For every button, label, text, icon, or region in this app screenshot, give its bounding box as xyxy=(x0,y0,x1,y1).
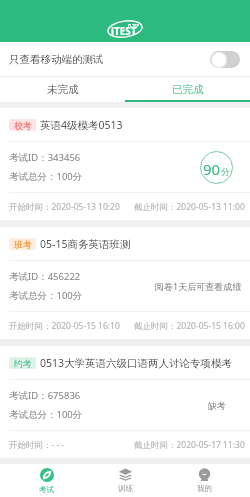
staticText: 约考 xyxy=(14,358,32,369)
staticText: 已完成 xyxy=(172,83,204,96)
staticText: 只查看移动端的测试 xyxy=(9,53,104,66)
staticText: 截止时间：2020-05-17 11:30 xyxy=(134,439,245,451)
staticText: 未完成 xyxy=(47,83,79,96)
staticText: 考试总分：100分 xyxy=(9,408,83,421)
staticText: 开始时间：2020-05-13 10:20 xyxy=(9,201,120,213)
staticText: 考试ID：675836 xyxy=(9,389,81,402)
staticText: 截止时间：2020-05-13 11:00 xyxy=(134,201,245,213)
staticText: 05-15商务英语班测 xyxy=(40,237,131,251)
button[interactable]: 约考 xyxy=(0,346,250,458)
staticText: 训练 xyxy=(118,484,133,493)
staticText: 考试ID：343456 xyxy=(9,151,81,164)
staticText: 考试ID：456222 xyxy=(9,270,81,283)
button[interactable]: 未完成 xyxy=(0,77,125,102)
staticText: 阅卷1天后可查看成绩 xyxy=(155,280,242,292)
staticText: 考试总分：100分 xyxy=(9,289,83,302)
button[interactable]: 考试 xyxy=(7,464,86,497)
button[interactable]: 已完成 xyxy=(125,77,250,102)
staticText: 开始时间：- - - xyxy=(9,439,65,451)
staticText: 校考 xyxy=(14,120,32,131)
button[interactable]: 班考 xyxy=(0,227,250,339)
staticText: 分 xyxy=(221,167,230,178)
staticText: 我的 xyxy=(197,484,212,493)
staticText: 90 xyxy=(203,159,221,179)
button[interactable]: 训练 xyxy=(86,464,165,497)
button[interactable]: 校考 xyxy=(0,108,250,220)
staticText: 英语4级模考0513 xyxy=(40,118,123,132)
button[interactable]: 我的 xyxy=(165,464,244,497)
button[interactable]: 只查看移动端的测试开关 xyxy=(210,51,240,68)
staticText: 截止时间：2020-05-15 16:00 xyxy=(134,320,245,332)
staticText: 缺考 xyxy=(208,400,226,411)
staticText: 0513大学英语六级口语两人讨论专项模考 xyxy=(40,356,233,370)
staticText: iTEST xyxy=(111,24,137,38)
staticText: 班考 xyxy=(14,239,32,250)
staticText: 考试 xyxy=(39,485,54,494)
staticText: FLTRP xyxy=(128,23,140,28)
staticText: 考试总分：100分 xyxy=(9,170,83,183)
staticText: 开始时间：2020-05-15 16:10 xyxy=(9,320,120,332)
